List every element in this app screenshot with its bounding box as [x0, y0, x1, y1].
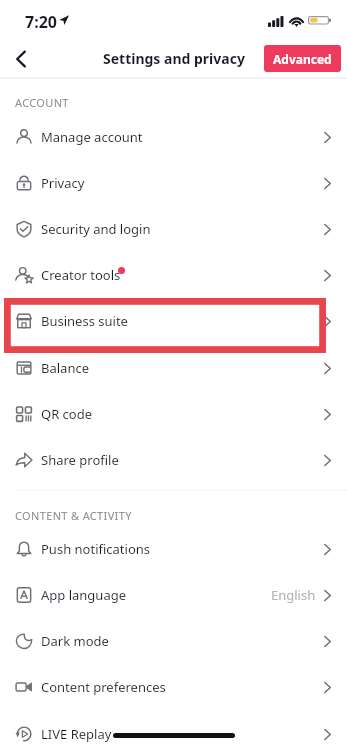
staticText: Security and login [41, 220, 151, 238]
staticText: 7:20 [25, 11, 57, 33]
button[interactable]: Business suite [0, 298, 347, 344]
button[interactable]: Push notifications [0, 526, 347, 572]
staticText: QR code [41, 405, 93, 423]
button[interactable]: Balance [0, 345, 347, 391]
staticText: Manage account [41, 128, 143, 146]
button[interactable]: Creator tools [0, 252, 347, 298]
staticText: CONTENT & ACTIVITY [15, 508, 132, 521]
staticText: LIVE Replay [41, 725, 112, 743]
staticText: Balance [41, 359, 89, 377]
staticText: Share profile [41, 451, 119, 469]
button[interactable]: Advanced [264, 45, 341, 72]
staticText: ACCOUNT [15, 95, 69, 108]
button[interactable]: Back [3, 36, 43, 76]
button[interactable]: Content preferences [0, 664, 347, 710]
staticText: App language [41, 586, 127, 604]
button[interactable]: Dark mode [0, 618, 347, 664]
staticText: Push notifications [41, 540, 151, 558]
staticText: Advanced [273, 51, 332, 67]
button[interactable]: Privacy [0, 160, 347, 206]
button[interactable]: Share profile [0, 437, 347, 483]
button[interactable]: Manage account [0, 114, 347, 160]
button[interactable]: LIVE Replay [0, 711, 347, 750]
button[interactable]: Security and login [0, 206, 347, 252]
staticText: Business suite [41, 312, 128, 330]
staticText: Dark mode [41, 632, 109, 650]
button[interactable]: QR code [0, 391, 347, 437]
staticText: Content preferences [41, 678, 166, 696]
staticText: Creator tools [41, 266, 121, 284]
staticText: English [271, 586, 316, 604]
button[interactable]: App language [0, 572, 347, 618]
staticText: Privacy [41, 174, 85, 192]
staticText: Settings and privacy [103, 49, 245, 68]
